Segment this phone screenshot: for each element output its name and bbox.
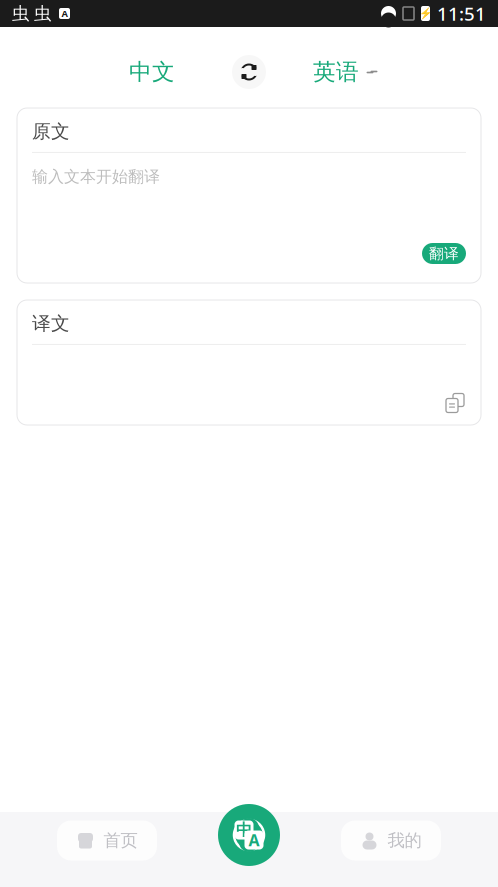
staticText: 输入文本开始翻译 bbox=[32, 167, 160, 187]
button[interactable]: 翻译 bbox=[422, 243, 466, 264]
button[interactable]: 英语 bbox=[271, 50, 421, 94]
staticText: 我的 bbox=[387, 830, 421, 851]
staticText: 11:51 bbox=[437, 1, 486, 26]
staticText: 翻译 bbox=[429, 244, 459, 262]
staticText: A bbox=[61, 7, 67, 20]
button[interactable]: Copy translation bbox=[441, 389, 469, 417]
button[interactable]: 首页 bbox=[57, 820, 157, 860]
button[interactable]: 中文 bbox=[77, 50, 227, 94]
staticText: 译文 bbox=[32, 312, 70, 335]
staticText: A bbox=[248, 829, 259, 851]
staticText: 英语 bbox=[313, 58, 359, 86]
staticText: 首页 bbox=[103, 830, 137, 851]
button[interactable]: Swap languages bbox=[227, 50, 271, 94]
staticText: 原文 bbox=[32, 120, 70, 143]
staticText: 中 bbox=[236, 820, 252, 840]
staticText: 中文 bbox=[129, 58, 175, 86]
staticText: ⚡ bbox=[419, 7, 432, 20]
button[interactable]: Translate bbox=[218, 804, 280, 866]
staticText: 虫 虫 bbox=[12, 3, 51, 24]
button[interactable]: 我的 bbox=[341, 820, 441, 860]
